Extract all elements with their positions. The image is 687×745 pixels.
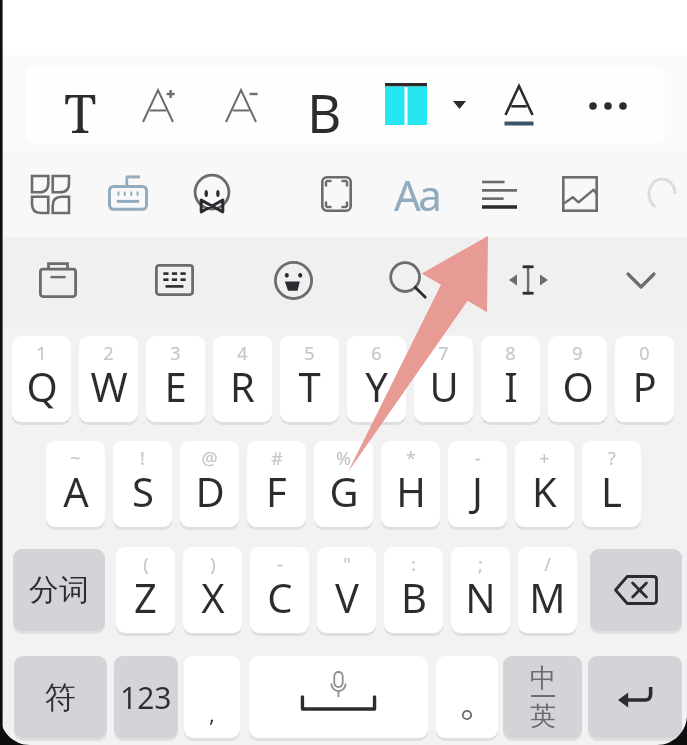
button[interactable]: Font [387,166,447,222]
button[interactable]: C [250,547,309,633]
button[interactable]: Sticker [184,166,240,222]
staticText: @ [201,446,218,471]
button[interactable]: E [146,336,205,422]
button[interactable]: G [314,441,373,527]
button[interactable]: V [317,547,376,633]
button[interactable]: P [615,336,674,422]
staticText: N [465,570,496,624]
staticText: 英 [530,700,556,733]
button[interactable]: Clipboard [30,252,86,308]
button[interactable]: Space [249,656,428,738]
staticText: U [429,359,459,413]
button[interactable]: T [280,336,339,422]
button[interactable]: Increase font size [128,76,188,136]
staticText: F [266,464,287,518]
button[interactable]: F [247,441,306,527]
staticText: H [396,464,426,518]
button[interactable]: Bold [294,76,354,136]
staticText: 4 [237,341,248,366]
button[interactable]: Keyboard layout [146,252,202,308]
staticText: 5 [304,341,315,366]
button[interactable]: I [481,336,540,422]
staticText: B [401,570,427,624]
staticText: # [271,446,283,471]
staticText: - [277,552,283,577]
button[interactable]: O [548,336,607,422]
staticText: J [472,464,483,518]
button[interactable]: D [180,441,239,527]
button[interactable]: Text style [50,76,110,136]
staticText: C [267,570,293,624]
button[interactable]: N [451,547,510,633]
button[interactable]: Symbols [14,656,107,738]
button[interactable]: More tools [636,168,687,220]
button[interactable]: AI assistant [100,166,156,222]
staticText: 3 [170,341,181,366]
button[interactable]: H [381,441,440,527]
button[interactable]: Period [436,656,498,738]
staticText: 9 [572,341,583,366]
button[interactable]: Highlight colour [378,76,434,132]
staticText: Z [134,570,157,624]
staticText: I [504,359,518,413]
button[interactable]: Numbers [114,656,178,738]
staticText: , [209,698,215,728]
staticText: P [632,359,657,413]
button[interactable]: A [46,441,105,527]
button[interactable]: Emoji [265,252,321,308]
staticText: ) [210,552,216,577]
button[interactable]: X [183,547,242,633]
staticText: ? [608,446,616,471]
staticText: S [132,464,154,518]
button[interactable]: W [79,336,138,422]
button[interactable]: Backspace [590,549,682,631]
staticText: - [475,446,481,471]
button[interactable]: L [582,441,641,527]
button[interactable]: Search [380,252,436,308]
staticText: W [90,359,128,413]
button[interactable]: Word segmentation [13,549,105,631]
button[interactable]: Insert image [552,166,608,222]
button[interactable]: More [578,84,638,128]
staticText: ! [140,446,145,471]
button[interactable]: R [213,336,272,422]
button[interactable]: S [113,441,172,527]
button[interactable]: J [448,441,507,527]
staticText: K [532,464,557,518]
button[interactable]: Font colour [487,74,551,138]
button[interactable]: Enter [588,656,682,738]
button[interactable]: Z [116,547,175,633]
button[interactable]: Align [471,168,527,220]
staticText: R [230,359,255,413]
button[interactable]: B [384,547,443,633]
staticText: + [539,446,550,471]
staticText: 0 [639,341,650,366]
staticText: 6 [371,341,382,366]
staticText: 8 [505,341,516,366]
button[interactable]: Y [347,336,406,422]
staticText: Y [365,359,388,413]
staticText: T [64,76,97,136]
staticText: % [336,446,351,471]
staticText: 符 [45,678,76,717]
staticText: ~ [70,446,81,471]
button[interactable]: Comma [184,656,240,738]
staticText: : [411,552,416,577]
staticText: 分词 [29,571,89,609]
staticText: V [335,570,359,624]
button[interactable]: Decrease font size [211,76,271,136]
button[interactable]: Chinese English toggle [503,656,582,738]
button[interactable]: Q [12,336,71,422]
button[interactable]: More colours [441,89,477,121]
staticText: L [601,464,622,518]
button[interactable]: Apps [24,168,76,220]
button[interactable]: Collapse keyboard [613,258,669,302]
button[interactable]: M [518,547,577,633]
staticText: 123 [120,677,172,718]
staticText: X [201,570,225,624]
button[interactable]: U [414,336,473,422]
staticText: G [329,464,359,518]
button[interactable]: Crop [310,168,362,220]
button[interactable]: K [515,441,574,527]
button[interactable]: Move cursor [500,258,556,302]
